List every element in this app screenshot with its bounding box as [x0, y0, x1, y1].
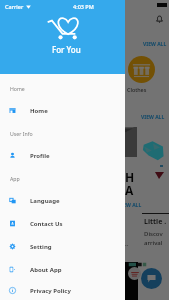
staticText: Privacy Policy: [30, 287, 71, 295]
button[interactable]: About App: [0, 258, 125, 281]
staticText: User Info: [10, 130, 33, 137]
staticText: VIEW ALL: [118, 202, 142, 209]
staticText: A: [125, 182, 134, 198]
button[interactable]: Privacy Policy: [0, 281, 125, 300]
button[interactable]: Contact Us: [0, 212, 125, 235]
staticText: VIEW ALL: [143, 41, 167, 48]
button[interactable]: [128, 56, 155, 83]
staticText: H: [125, 169, 135, 185]
staticText: Carrier: [5, 3, 24, 10]
staticText: Contact Us: [30, 220, 63, 228]
staticText: t...: [121, 240, 129, 248]
button[interactable]: Language: [0, 189, 125, 212]
staticText: Home: [10, 85, 25, 92]
button[interactable]: Setting: [0, 235, 125, 258]
staticText: arrival: [144, 239, 163, 247]
staticText: Home: [30, 107, 48, 115]
staticText: Setting: [30, 243, 52, 251]
staticText: Clothes: [127, 86, 147, 93]
staticText: Profile: [30, 152, 50, 160]
staticText: For You: [52, 44, 81, 55]
staticText: Discov: [144, 230, 163, 238]
staticText: About App: [30, 266, 62, 274]
button[interactable]: Chat: [141, 268, 162, 289]
staticText: VIEW ALL: [141, 114, 165, 121]
staticText: Language: [30, 197, 60, 205]
staticText: 4:03 PM: [73, 3, 94, 10]
staticText: App: [10, 175, 20, 182]
button[interactable]: VIEW ALL: [141, 114, 165, 121]
button[interactable]: Notifications: [155, 15, 164, 24]
staticText: Little .: [144, 217, 167, 227]
button[interactable]: VIEW ALL: [143, 41, 167, 48]
button[interactable]: Profile: [0, 144, 125, 167]
button[interactable]: Home: [0, 99, 125, 122]
